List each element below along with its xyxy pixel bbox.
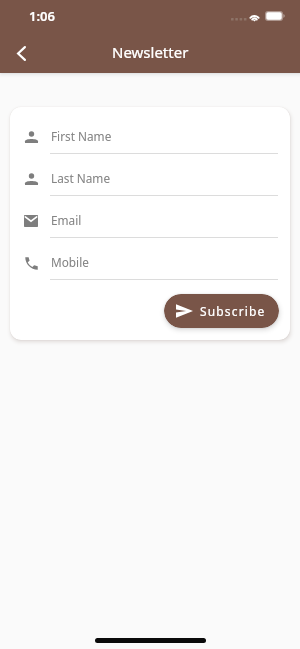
button[interactable]: Back	[0, 32, 44, 73]
button[interactable]: Subscribe	[164, 294, 279, 328]
staticText: First Name	[51, 128, 112, 144]
staticText: Last Name	[51, 170, 111, 186]
staticText: 1:06	[29, 7, 55, 25]
staticText: Newsletter	[112, 42, 189, 62]
staticText: Email	[51, 212, 82, 228]
staticText: Mobile	[51, 254, 89, 270]
staticText: Subscribe	[200, 303, 266, 319]
